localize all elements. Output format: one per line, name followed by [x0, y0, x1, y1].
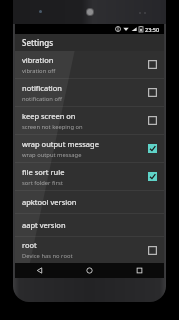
staticText: sort folder first [22, 179, 63, 187]
button[interactable]: aapt version [15, 214, 164, 236]
staticText: wrap output message [22, 151, 82, 159]
staticText: vibration off [22, 67, 56, 75]
staticText: aapt version [22, 220, 66, 230]
button[interactable]: Unchecked [148, 246, 157, 255]
staticText: file sort rule [22, 167, 65, 177]
button[interactable]: Unchecked [148, 116, 157, 125]
button[interactable]: Unchecked [148, 60, 157, 69]
button[interactable]: Back [15, 263, 64, 278]
button[interactable]: Home [64, 263, 114, 278]
button[interactable]: Recents [114, 263, 164, 278]
staticText: notification off [22, 95, 62, 103]
staticText: 23:50 [145, 26, 160, 33]
button[interactable]: wrap output message [15, 135, 164, 162]
staticText: vibration [22, 55, 54, 65]
button[interactable]: notification [15, 79, 164, 106]
button[interactable]: file sort rule [15, 163, 164, 190]
button[interactable]: root [15, 237, 164, 263]
staticText: keep screen on [22, 111, 76, 121]
button[interactable]: apktool version [15, 191, 164, 213]
staticText: Settings [22, 37, 54, 48]
button[interactable]: Checked [148, 172, 157, 181]
button[interactable]: vibration [15, 51, 164, 78]
button[interactable]: keep screen on [15, 107, 164, 134]
staticText: apktool version [22, 197, 77, 207]
staticText: root [22, 240, 37, 250]
staticText: wrap output message [22, 139, 99, 149]
button[interactable]: Checked [148, 144, 157, 153]
staticText: notification [22, 83, 62, 93]
staticText: Device has no root [22, 252, 73, 260]
button[interactable]: Unchecked [148, 88, 157, 97]
staticText: screen not keeping on [22, 123, 83, 131]
